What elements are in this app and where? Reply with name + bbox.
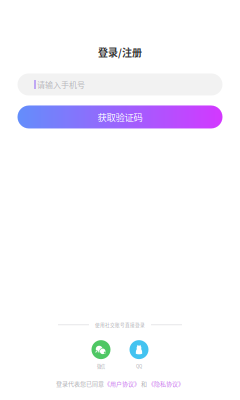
button[interactable]: 《隐私协议》 <box>148 379 184 388</box>
button[interactable]: 使用微信登录 <box>91 340 110 369</box>
staticText: 《隐私协议》 <box>148 379 184 388</box>
staticText: QQ <box>136 363 142 369</box>
button[interactable]: 使用QQ登录 <box>129 340 148 369</box>
button[interactable]: 请输入手机号 <box>17 73 222 95</box>
staticText: 使用社交账号直接登录 <box>95 321 145 328</box>
staticText: 登录/注册 <box>98 45 142 59</box>
staticText: 请输入手机号 <box>37 79 85 90</box>
staticText: 和 <box>140 379 148 388</box>
button[interactable]: 获取验证码 <box>17 105 222 128</box>
staticText: 微信 <box>97 363 105 369</box>
staticText: 《用户协议》 <box>104 379 140 388</box>
button[interactable]: 《用户协议》 <box>104 379 140 388</box>
staticText: 登录代表您已同意 <box>56 379 104 388</box>
staticText: 获取验证码 <box>97 110 142 124</box>
